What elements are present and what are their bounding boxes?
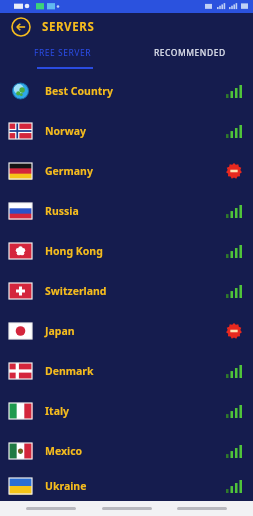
staticText: Russia — [45, 204, 79, 218]
other: VIP server — [226, 163, 242, 179]
staticText: Mexico — [45, 444, 83, 458]
button[interactable]: System navigation — [26, 507, 76, 510]
button[interactable]: FREE SERVER — [0, 41, 126, 65]
button[interactable]: Best Country — [0, 71, 253, 111]
other: Signal strength — [226, 405, 242, 418]
staticText: Denmark — [45, 364, 94, 378]
button[interactable]: System navigation — [102, 507, 152, 510]
button[interactable]: Ukraine — [0, 471, 253, 501]
button[interactable]: Italy — [0, 391, 253, 431]
other: Signal strength — [226, 285, 242, 298]
button[interactable]: Russia — [0, 191, 253, 231]
button[interactable]: Germany — [0, 151, 253, 191]
other: Signal strength — [226, 445, 242, 458]
staticText: Hong Kong — [45, 244, 103, 258]
button[interactable]: Norway — [0, 111, 253, 151]
other: Signal strength — [226, 365, 242, 378]
staticText: Norway — [45, 124, 87, 138]
staticText: Switzerland — [45, 284, 107, 298]
staticText: Ukraine — [45, 479, 87, 493]
staticText: Germany — [45, 164, 93, 178]
button[interactable]: Back — [11, 17, 31, 37]
staticText: SERVERS — [42, 19, 95, 35]
other: Signal strength — [226, 85, 242, 98]
other: Signal strength — [226, 125, 242, 138]
staticText: Italy — [45, 404, 70, 418]
other: Signal strength — [226, 205, 242, 218]
button[interactable]: Mexico — [0, 431, 253, 471]
button[interactable]: Switzerland — [0, 271, 253, 311]
button[interactable]: System navigation — [177, 507, 227, 510]
staticText: Best Country — [45, 84, 114, 98]
staticText: Japan — [45, 324, 75, 338]
other: Signal strength — [226, 245, 242, 258]
button[interactable]: Japan — [0, 311, 253, 351]
staticText: RECOMMENDED — [154, 47, 226, 59]
button[interactable]: RECOMMENDED — [126, 41, 253, 65]
other: VIP server — [226, 323, 242, 339]
button[interactable]: Denmark — [0, 351, 253, 391]
button[interactable]: Hong Kong — [0, 231, 253, 271]
staticText: FREE SERVER — [34, 47, 92, 59]
